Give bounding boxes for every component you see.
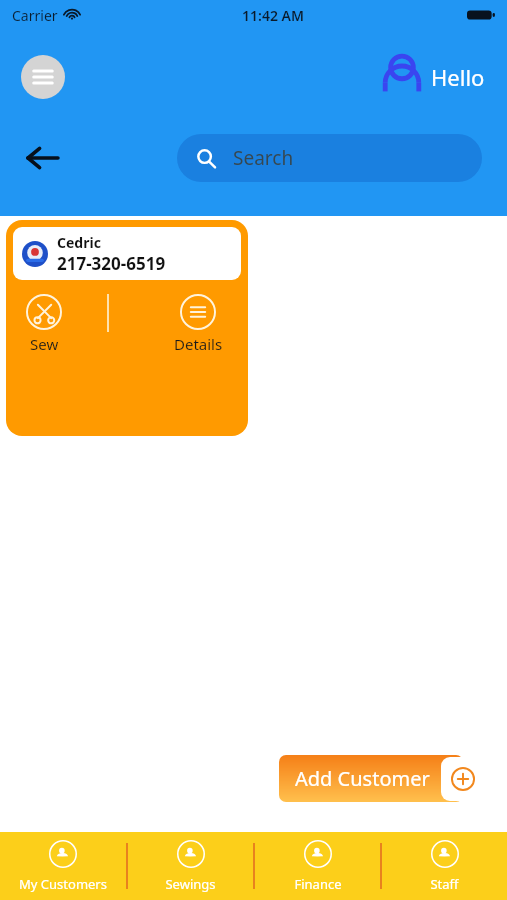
button[interactable]: Menu <box>21 55 65 99</box>
button[interactable]: Hello <box>381 53 507 101</box>
button[interactable]: Search <box>177 134 482 182</box>
button[interactable]: Add Customer <box>279 755 485 802</box>
button[interactable]: Details <box>161 294 235 354</box>
button[interactable]: Sewings <box>128 832 253 900</box>
staticText: My Customers <box>19 875 107 893</box>
button[interactable]: My Customers <box>0 832 126 900</box>
staticText: Finance <box>294 875 342 893</box>
button[interactable]: Back <box>18 133 68 183</box>
staticText: Sew <box>30 334 59 354</box>
button[interactable]: Staff <box>382 832 507 900</box>
staticText: Staff <box>430 875 459 893</box>
button[interactable]: Finance <box>255 832 380 900</box>
staticText: Details <box>174 334 223 354</box>
staticText: 11:42 AM <box>242 6 304 25</box>
staticText: Hello <box>431 62 485 92</box>
staticText: Sewings <box>165 875 216 893</box>
button[interactable]: Sew <box>13 294 75 354</box>
button[interactable]: Cedric <box>6 220 248 436</box>
staticText: Carrier <box>12 6 58 25</box>
staticText: Add Customer <box>295 765 430 792</box>
staticText: Search <box>233 145 294 171</box>
staticText: 217-320-6519 <box>57 252 166 275</box>
staticText: Cedric <box>57 233 101 252</box>
